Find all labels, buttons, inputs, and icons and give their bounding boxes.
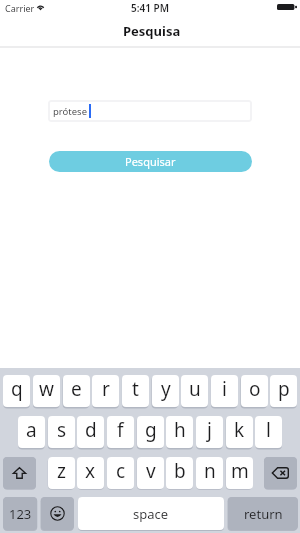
button[interactable]: r [92,375,119,407]
staticText: o [249,376,261,402]
staticText: p [278,376,290,402]
staticText: z [57,458,66,484]
staticText: Pesquisa [123,22,181,40]
staticText: s [57,417,67,443]
staticText: u [189,376,201,402]
button[interactable]: q [3,375,30,407]
button[interactable]: x [77,457,104,489]
staticText: Carrier [5,2,35,14]
button[interactable]: i [211,375,238,407]
staticText: i [222,376,227,402]
staticText: return [244,505,283,523]
button[interactable]: c [107,457,134,489]
staticText: w [39,376,54,402]
button[interactable]: s [48,416,75,448]
button[interactable]: Shift [3,457,36,489]
staticText: f [117,417,124,443]
button[interactable]: u [181,375,208,407]
staticText: b [174,458,186,484]
button[interactable]: k [226,416,253,448]
button[interactable]: return [228,497,298,530]
staticText: j [207,417,212,443]
button[interactable]: Numbers [3,497,37,530]
staticText: a [26,417,37,443]
staticText: n [204,458,216,484]
button[interactable]: Emoji [41,497,74,530]
button[interactable]: Backspace [264,457,297,489]
staticText: g [145,417,157,443]
button[interactable]: h [166,416,193,448]
staticText: y [161,376,171,402]
button[interactable]: w [33,375,60,407]
staticText: l [266,417,271,443]
button[interactable]: Pesquisar [49,151,252,172]
button[interactable]: space [78,497,224,530]
button[interactable]: d [77,416,104,448]
staticText: Pesquisar [125,154,176,169]
button[interactable]: l [255,416,282,448]
staticText: t [132,376,139,402]
button[interactable]: g [137,416,164,448]
staticText: 5:41 PM [131,1,169,15]
button[interactable]: f [107,416,134,448]
button[interactable]: y [152,375,179,407]
staticText: x [85,458,96,484]
button[interactable]: v [137,457,164,489]
staticText: prótese [53,105,88,118]
button[interactable]: m [226,457,253,489]
staticText: 123 [9,505,32,523]
button[interactable]: b [166,457,193,489]
button[interactable]: prótese [48,100,252,122]
staticText: k [234,417,245,443]
staticText: v [146,458,156,484]
staticText: space [133,505,169,523]
button[interactable]: n [196,457,223,489]
button[interactable]: a [18,416,45,448]
button[interactable]: z [48,457,75,489]
staticText: d [85,417,97,443]
staticText: c [116,458,126,484]
staticText: h [174,417,186,443]
staticText: r [102,376,110,402]
button[interactable]: e [63,375,90,407]
button[interactable]: t [122,375,149,407]
staticText: q [11,376,23,402]
button[interactable]: j [196,416,223,448]
button[interactable]: p [270,375,297,407]
staticText: e [71,376,82,402]
button[interactable]: o [241,375,268,407]
staticText: m [231,458,249,484]
